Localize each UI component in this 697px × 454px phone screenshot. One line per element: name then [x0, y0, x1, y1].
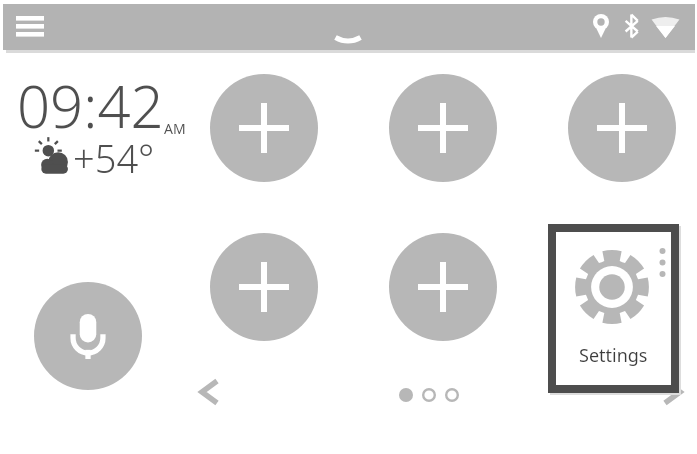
button[interactable]: More options: [556, 232, 671, 385]
staticText: AM: [164, 119, 186, 138]
staticText: Settings: [579, 343, 648, 368]
button[interactable]: 09:42: [17, 66, 186, 197]
button[interactable]: Wi-Fi: [651, 16, 680, 38]
button[interactable]: Add widget: [210, 233, 318, 341]
button[interactable]: Bluetooth: [624, 14, 640, 38]
button[interactable]: Add widget: [389, 74, 497, 182]
button[interactable]: Add widget: [389, 233, 497, 341]
button[interactable]: Page 1: [399, 388, 413, 402]
button[interactable]: More options: [659, 248, 666, 280]
button[interactable]: Menu: [10, 10, 46, 44]
button[interactable]: Previous page: [194, 377, 224, 407]
button[interactable]: Page 3: [445, 388, 459, 402]
button[interactable]: Add widget: [568, 74, 676, 182]
button[interactable]: Add widget: [210, 74, 318, 182]
button[interactable]: Voice search: [34, 282, 142, 390]
staticText: +54°: [73, 132, 155, 184]
button[interactable]: Next page: [657, 377, 687, 407]
button[interactable]: Expand notifications: [334, 36, 362, 46]
button[interactable]: Location: [593, 14, 609, 38]
button[interactable]: Page 2: [422, 388, 436, 402]
staticText: 09:42: [17, 66, 164, 145]
